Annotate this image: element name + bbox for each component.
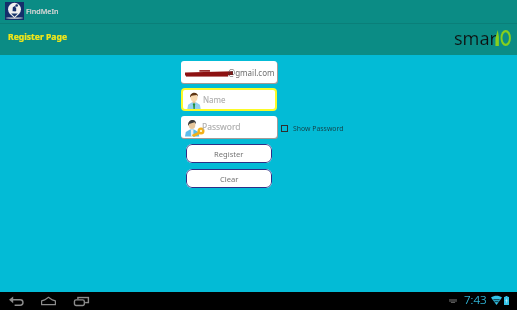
button[interactable]: Clear: [186, 169, 272, 188]
button[interactable]: Name: [183, 90, 275, 109]
button[interactable]: Keyboard: [446, 295, 460, 307]
staticText: Name: [203, 94, 226, 105]
staticText: Show Password: [293, 124, 344, 133]
staticText: Clear: [220, 174, 239, 184]
button[interactable]: Back: [6, 293, 26, 309]
button[interactable]: Password: [181, 116, 277, 138]
button[interactable]: Home: [38, 293, 58, 309]
staticText: Register Page: [8, 31, 68, 43]
staticText: smar: [454, 26, 497, 48]
staticText: 7:43: [464, 292, 487, 308]
staticText: Register: [214, 149, 244, 159]
button[interactable]: @gmail.com: [181, 61, 277, 83]
button[interactable]: Show Password: [281, 120, 344, 136]
staticText: @gmail.com: [228, 67, 275, 78]
button[interactable]: Register: [186, 144, 272, 163]
staticText: FindMeIn: [26, 6, 59, 16]
staticText: Password: [202, 121, 241, 133]
button[interactable]: Recent apps: [71, 293, 91, 309]
